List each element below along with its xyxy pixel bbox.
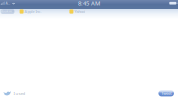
staticText: Tweet xyxy=(161,91,171,96)
staticText: AT&T xyxy=(5,1,11,5)
staticText: 8:45 AM xyxy=(78,0,100,7)
button[interactable]: Apple Inc. xyxy=(20,9,43,14)
button[interactable]: Bookmarks xyxy=(1,9,14,14)
staticText: Apple Inc. xyxy=(25,9,42,14)
staticText: I used xyxy=(13,90,25,96)
button[interactable]: Yahoo! xyxy=(69,9,87,14)
staticText: Yahoo! xyxy=(74,9,85,14)
staticText: Bookmarks xyxy=(1,9,14,14)
button[interactable]: I used xyxy=(0,90,25,96)
button[interactable]: Tweet xyxy=(158,90,174,96)
